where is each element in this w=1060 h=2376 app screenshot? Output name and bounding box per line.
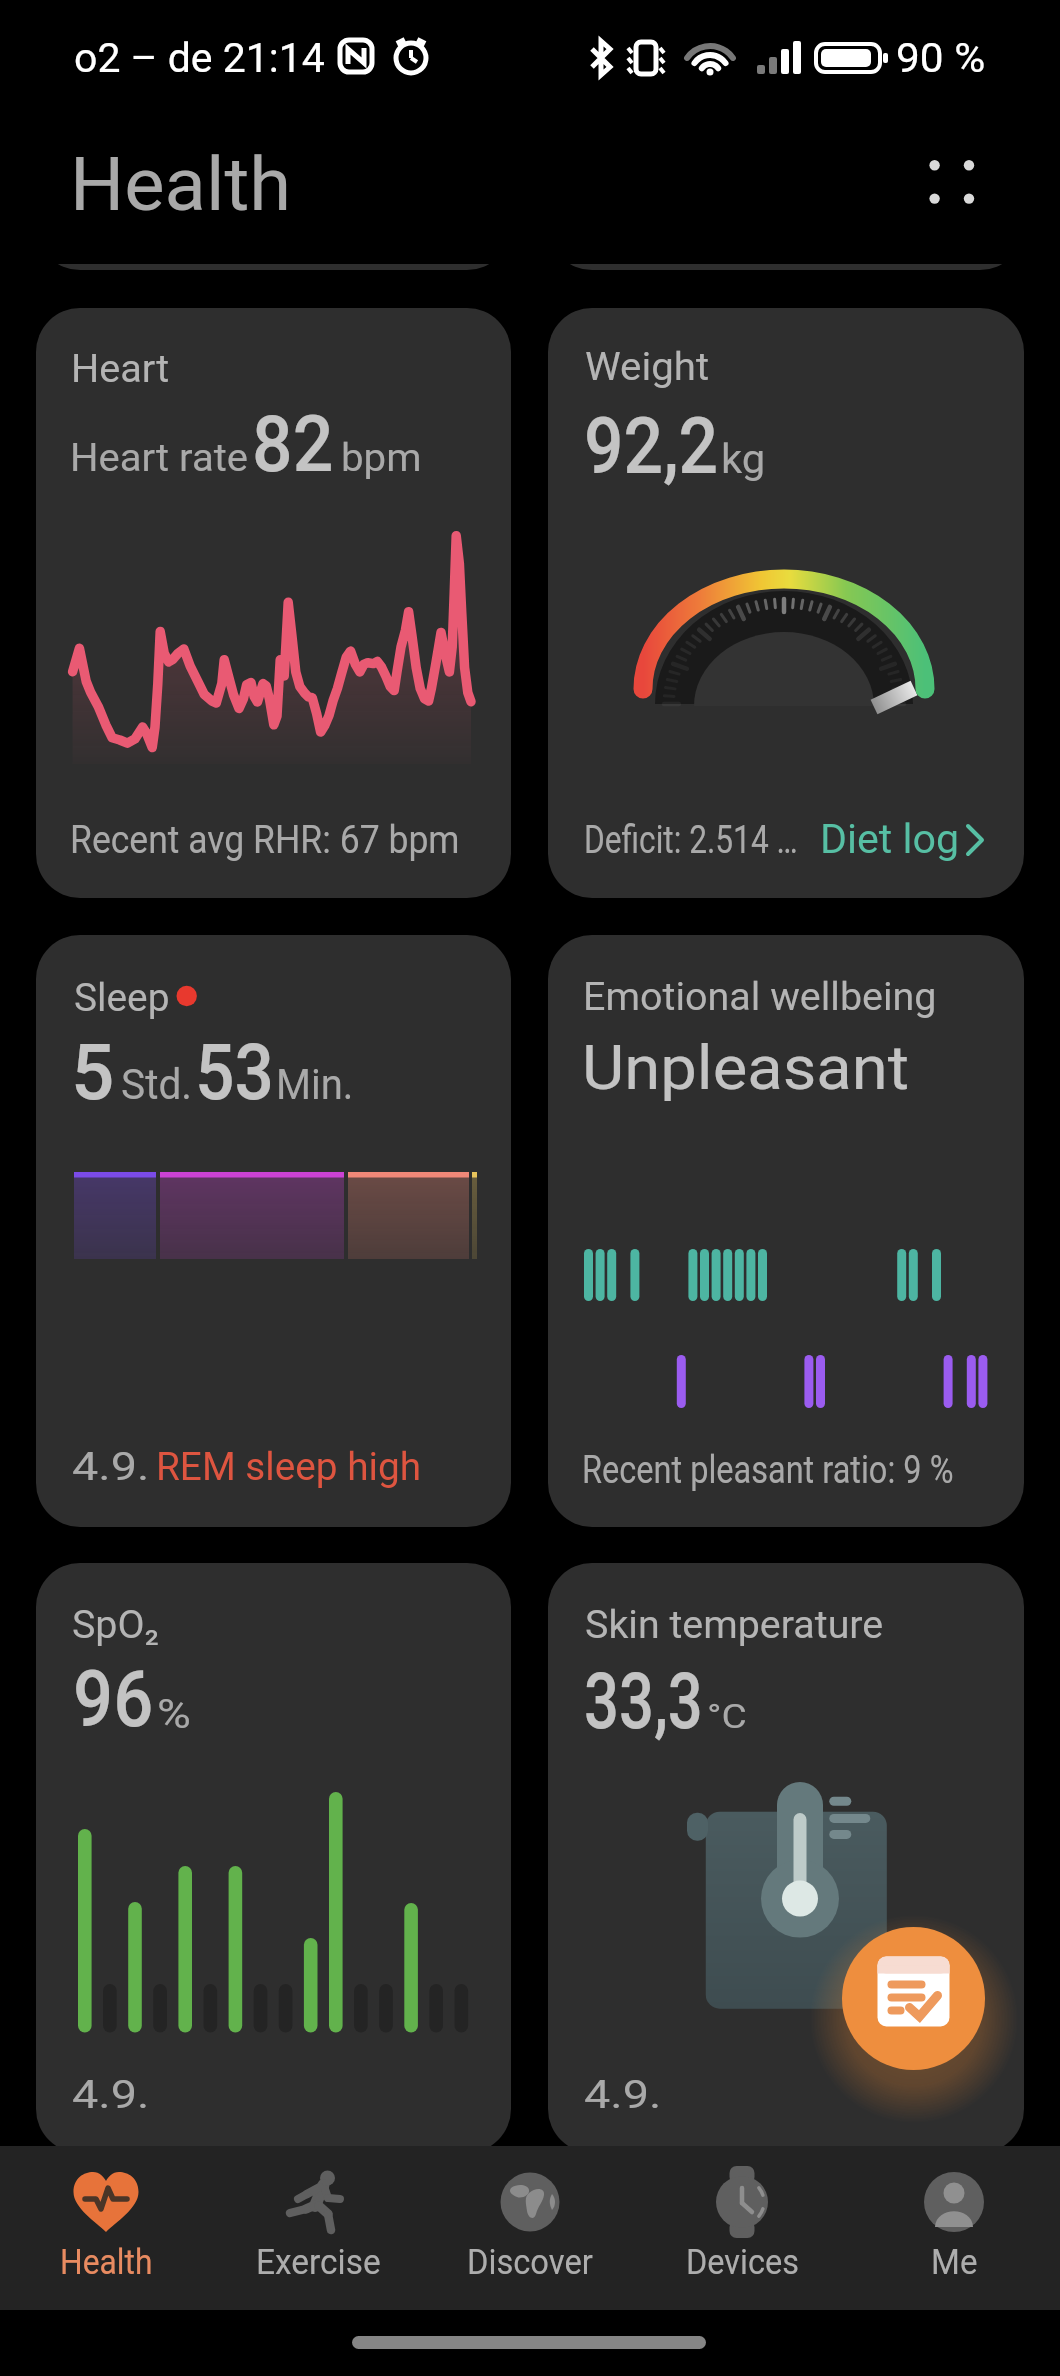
staticText: Recent pleasant ratio: 9 %	[582, 1448, 954, 1493]
staticText: Std.	[121, 1060, 193, 1109]
staticText: Min.	[276, 1060, 354, 1109]
staticText: 53	[195, 1027, 274, 1118]
button[interactable]: Me	[848, 2146, 1060, 2310]
staticText: Skin temperature	[585, 1603, 883, 1648]
staticText: o2 – de 21:14	[74, 34, 325, 82]
staticText: Emotional wellbeing	[583, 975, 937, 1020]
staticText: Heart rate	[70, 436, 248, 481]
staticText: Discover	[467, 2242, 593, 2282]
button[interactable]: Skin temperature	[548, 1563, 1024, 2146]
staticText: 4.9.	[72, 1445, 150, 1490]
staticText: Me	[931, 2242, 978, 2282]
button[interactable]: Weight	[548, 308, 1024, 898]
staticText: Diet log	[820, 816, 960, 863]
staticText: SpO₂	[72, 1603, 159, 1648]
button[interactable]: Health	[0, 2146, 212, 2310]
staticText: 92,2	[584, 401, 719, 492]
button[interactable]: Devices	[636, 2146, 848, 2310]
staticText: Devices	[686, 2242, 799, 2282]
staticText: Health	[70, 140, 292, 228]
staticText: Unpleasant	[582, 1031, 910, 1104]
staticText: °C	[707, 1697, 747, 1736]
staticText: Heart	[71, 347, 170, 392]
staticText: Sleep	[74, 976, 170, 1021]
staticText: 33,3	[584, 1656, 703, 1747]
staticText: %	[157, 1691, 192, 1738]
staticText: Deficit: 2.514 …	[584, 818, 798, 863]
button[interactable]: More options	[902, 133, 1002, 233]
staticText: 4.9.	[584, 2073, 662, 2118]
staticText: REM sleep high	[156, 1445, 421, 1490]
staticText: Exercise	[256, 2242, 381, 2282]
staticText: Recent avg RHR: 67 bpm	[70, 818, 460, 863]
button[interactable]: SpO₂	[36, 1563, 511, 2146]
staticText: Health	[60, 2242, 153, 2282]
button[interactable]: Heart	[36, 308, 511, 898]
staticText: bpm	[341, 436, 421, 481]
button[interactable]: Add record	[842, 1927, 985, 2070]
staticText: 5	[71, 1027, 115, 1118]
staticText: 82	[252, 399, 334, 490]
staticText: 4.9.	[72, 2073, 150, 2118]
button[interactable]: Sleep	[36, 935, 511, 1527]
button[interactable]: Diet log	[810, 812, 996, 872]
staticText: 96	[73, 1654, 154, 1745]
staticText: kg	[721, 436, 766, 483]
button[interactable]: Discover	[424, 2146, 636, 2310]
button[interactable]: Exercise	[212, 2146, 424, 2310]
button[interactable]: Emotional wellbeing	[548, 935, 1024, 1527]
staticText: 90 %	[896, 34, 986, 82]
staticText: Weight	[585, 345, 710, 390]
